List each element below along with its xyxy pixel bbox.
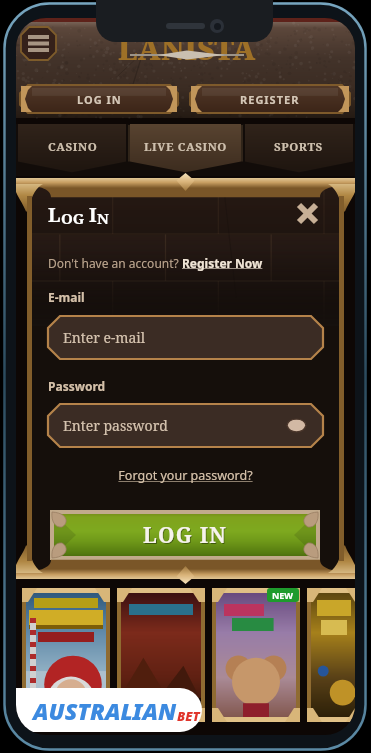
button[interactable]: LOG IN [20,85,178,113]
staticText: N [97,208,109,228]
staticText: BET [177,707,200,725]
button[interactable]: Register Now [182,255,263,271]
staticText: REGISTER [240,92,300,107]
staticText: AUSTRALIAN [33,695,177,726]
staticText: OG [61,208,85,228]
staticText: LANISTA [118,29,256,68]
staticText: CASINO [48,139,98,155]
staticText: Don't have an account? [48,255,182,271]
button[interactable]: Forgot your password? [27,467,344,484]
button[interactable] [22,588,110,722]
staticText: LOG IN [144,522,229,551]
button[interactable]: Enter e-mail [48,316,323,359]
button[interactable]: Enter password [48,404,323,447]
button[interactable] [117,588,205,722]
button[interactable]: CASINO [16,139,129,169]
button[interactable]: LOG IN [50,510,320,560]
staticText: LIVE CASINO [144,139,227,155]
staticText: LOG IN [77,92,122,107]
button[interactable]: LIVE CASINO [129,139,242,169]
button[interactable]: NEW [212,588,300,722]
staticText: I [89,202,97,228]
staticText: Enter e-mail [63,328,146,347]
staticText: Enter password [63,416,168,435]
staticText: L [48,202,61,228]
staticText: LOG IN [143,521,228,550]
button[interactable] [307,588,355,722]
staticText: SPORTS [274,139,323,155]
button[interactable]: REGISTER [190,85,350,113]
button[interactable]: SPORTS [242,139,355,169]
staticText: Password [48,378,106,394]
button[interactable]: Menu [21,27,56,60]
button[interactable]: Close [293,199,321,227]
staticText: E-mail [48,289,85,305]
staticText: NEW [272,589,294,601]
